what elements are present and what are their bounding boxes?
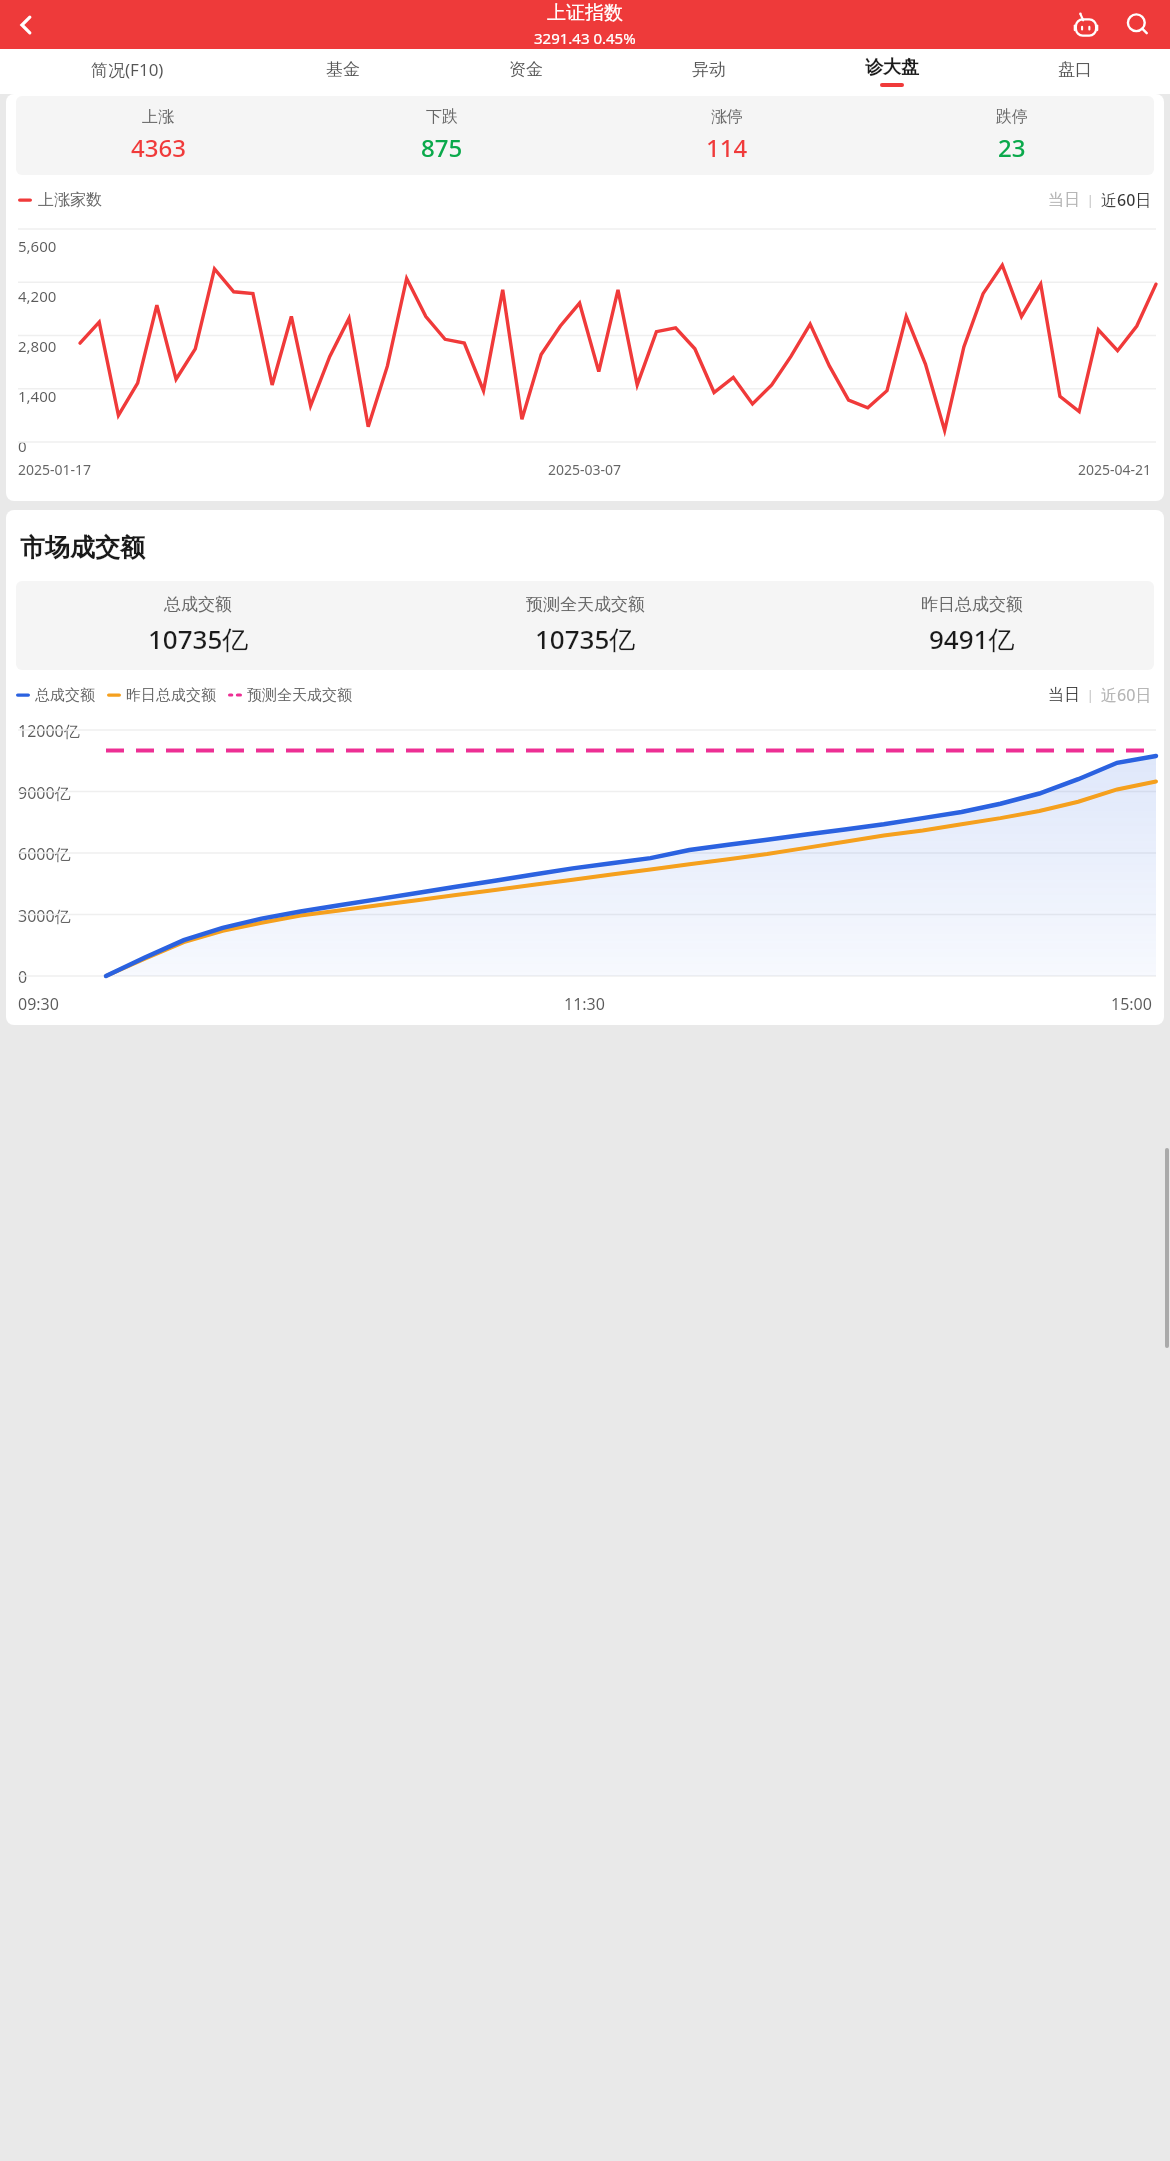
staticText: 114 xyxy=(706,131,748,164)
staticText: 资金 xyxy=(509,59,543,80)
staticText: 总成交额 xyxy=(35,686,95,705)
staticText: 9491亿 xyxy=(929,621,1015,657)
button[interactable]: Search xyxy=(1112,0,1164,49)
staticText: 6000亿 xyxy=(18,843,71,865)
button[interactable]: 近60日 xyxy=(1101,684,1152,706)
staticText: 当日 xyxy=(1048,685,1080,705)
staticText: 下跌 xyxy=(426,107,458,127)
staticText: 跌停 xyxy=(996,107,1028,127)
staticText: 诊大盘 xyxy=(865,56,919,79)
staticText: 3000亿 xyxy=(18,905,71,927)
staticText: 异动 xyxy=(692,59,726,80)
staticText: 15:00 xyxy=(1111,993,1152,1015)
staticText: 1,400 xyxy=(18,386,57,406)
staticText: 11:30 xyxy=(564,993,605,1015)
staticText: 4,200 xyxy=(18,286,57,306)
staticText: 上证指数 xyxy=(547,1,623,25)
staticText: 昨日总成交额 xyxy=(126,686,216,705)
staticText: 预测全天成交额 xyxy=(247,686,352,705)
button[interactable]: 当日 xyxy=(1048,685,1080,705)
button[interactable]: 诊大盘 xyxy=(800,49,983,94)
staticText: 总成交额 xyxy=(164,594,232,615)
staticText: 23 xyxy=(998,131,1026,164)
button[interactable]: 异动 xyxy=(617,49,800,94)
staticText: 10735亿 xyxy=(535,621,636,657)
button[interactable]: 资金 xyxy=(434,49,617,94)
staticText: 涨停 xyxy=(711,107,743,127)
staticText: 简况(F10) xyxy=(91,58,164,81)
staticText: 上涨家数 xyxy=(38,190,102,210)
staticText: | xyxy=(1080,191,1101,209)
button[interactable]: 基金 xyxy=(251,49,434,94)
button[interactable]: AI assistant xyxy=(1060,0,1112,49)
staticText: 上涨 xyxy=(142,107,174,127)
staticText: 0 xyxy=(18,966,28,988)
button[interactable]: 盘口 xyxy=(983,49,1166,94)
staticText: 当日 xyxy=(1048,190,1080,210)
button[interactable]: Back xyxy=(0,0,52,49)
staticText: 市场成交额 xyxy=(20,532,145,563)
staticText: 基金 xyxy=(326,59,360,80)
staticText: 2025-03-07 xyxy=(548,460,622,479)
staticText: 2025-01-17 xyxy=(18,460,92,479)
staticText: 3291.43 0.45% xyxy=(534,28,636,48)
staticText: | xyxy=(1080,686,1101,704)
staticText: 2025-04-21 xyxy=(1078,460,1152,479)
button[interactable]: 简况(F10) xyxy=(4,49,251,94)
staticText: 近60日 xyxy=(1101,684,1152,706)
staticText: 9000亿 xyxy=(18,782,71,804)
button[interactable]: 当日 xyxy=(1048,190,1080,210)
staticText: 09:30 xyxy=(18,993,59,1015)
button[interactable]: 近60日 xyxy=(1101,189,1152,211)
staticText: 预测全天成交额 xyxy=(526,594,645,615)
staticText: 875 xyxy=(421,131,463,164)
staticText: 近60日 xyxy=(1101,189,1152,211)
staticText: 12000亿 xyxy=(18,720,80,742)
staticText: 昨日总成交额 xyxy=(921,594,1023,615)
staticText: 0 xyxy=(18,436,27,456)
staticText: 5,600 xyxy=(18,236,57,256)
staticText: 10735亿 xyxy=(148,621,249,657)
staticText: 4363 xyxy=(131,131,186,164)
staticText: 2,800 xyxy=(18,336,57,356)
staticText: 盘口 xyxy=(1058,59,1092,80)
